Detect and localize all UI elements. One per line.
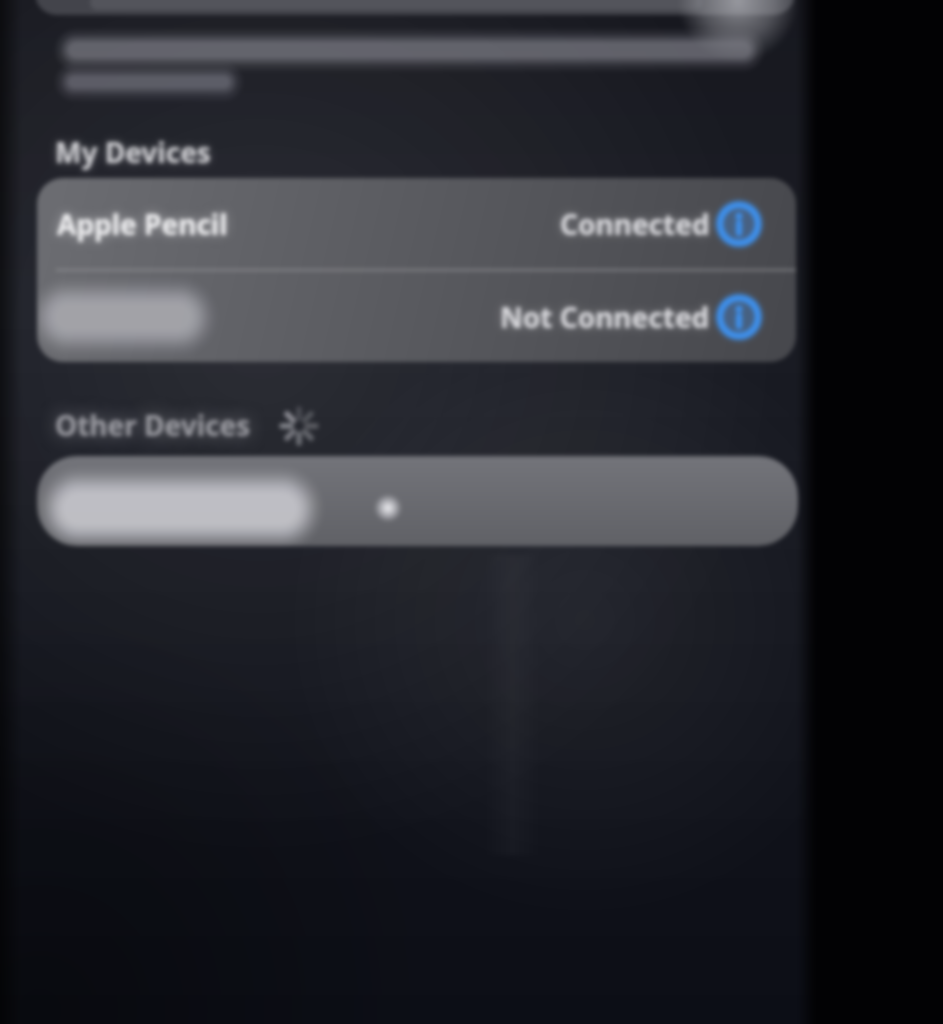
button[interactable] <box>716 201 762 247</box>
staticText: Connected <box>560 205 710 243</box>
staticText: Apple Pencil <box>57 205 228 243</box>
staticText: My Devices <box>55 133 211 171</box>
staticText: Other Devices <box>55 406 251 444</box>
button[interactable]: Apple Pencil <box>37 178 796 269</box>
button[interactable]: Not Connected <box>37 271 796 362</box>
button[interactable] <box>37 456 798 546</box>
staticText: Not Connected <box>500 298 710 336</box>
button[interactable] <box>716 294 762 340</box>
